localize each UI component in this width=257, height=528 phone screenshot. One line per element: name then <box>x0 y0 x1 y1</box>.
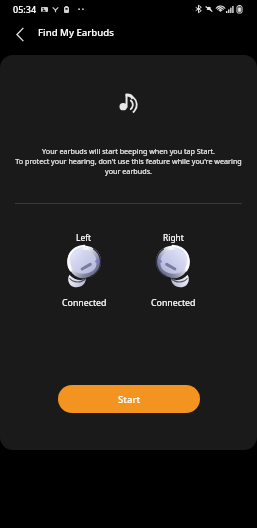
staticText: Your earbuds will start beeping when you… <box>42 146 215 156</box>
staticText: To protect your hearing, don't use this … <box>15 156 242 166</box>
button[interactable]: Start <box>58 385 200 413</box>
staticText: Right <box>163 232 184 243</box>
staticText: Find My Earbuds <box>38 26 114 39</box>
staticText: Connected <box>151 297 196 309</box>
staticText: Start <box>118 393 141 406</box>
staticText: Left <box>76 232 92 243</box>
button[interactable]: Left earbud, Connected <box>54 232 114 309</box>
staticText: 05:34 <box>13 3 37 15</box>
button[interactable]: Navigate up <box>3 18 36 51</box>
staticText: your earbuds. <box>105 166 152 176</box>
button[interactable]: Right earbud, Connected <box>143 232 203 309</box>
staticText: Connected <box>62 297 107 309</box>
